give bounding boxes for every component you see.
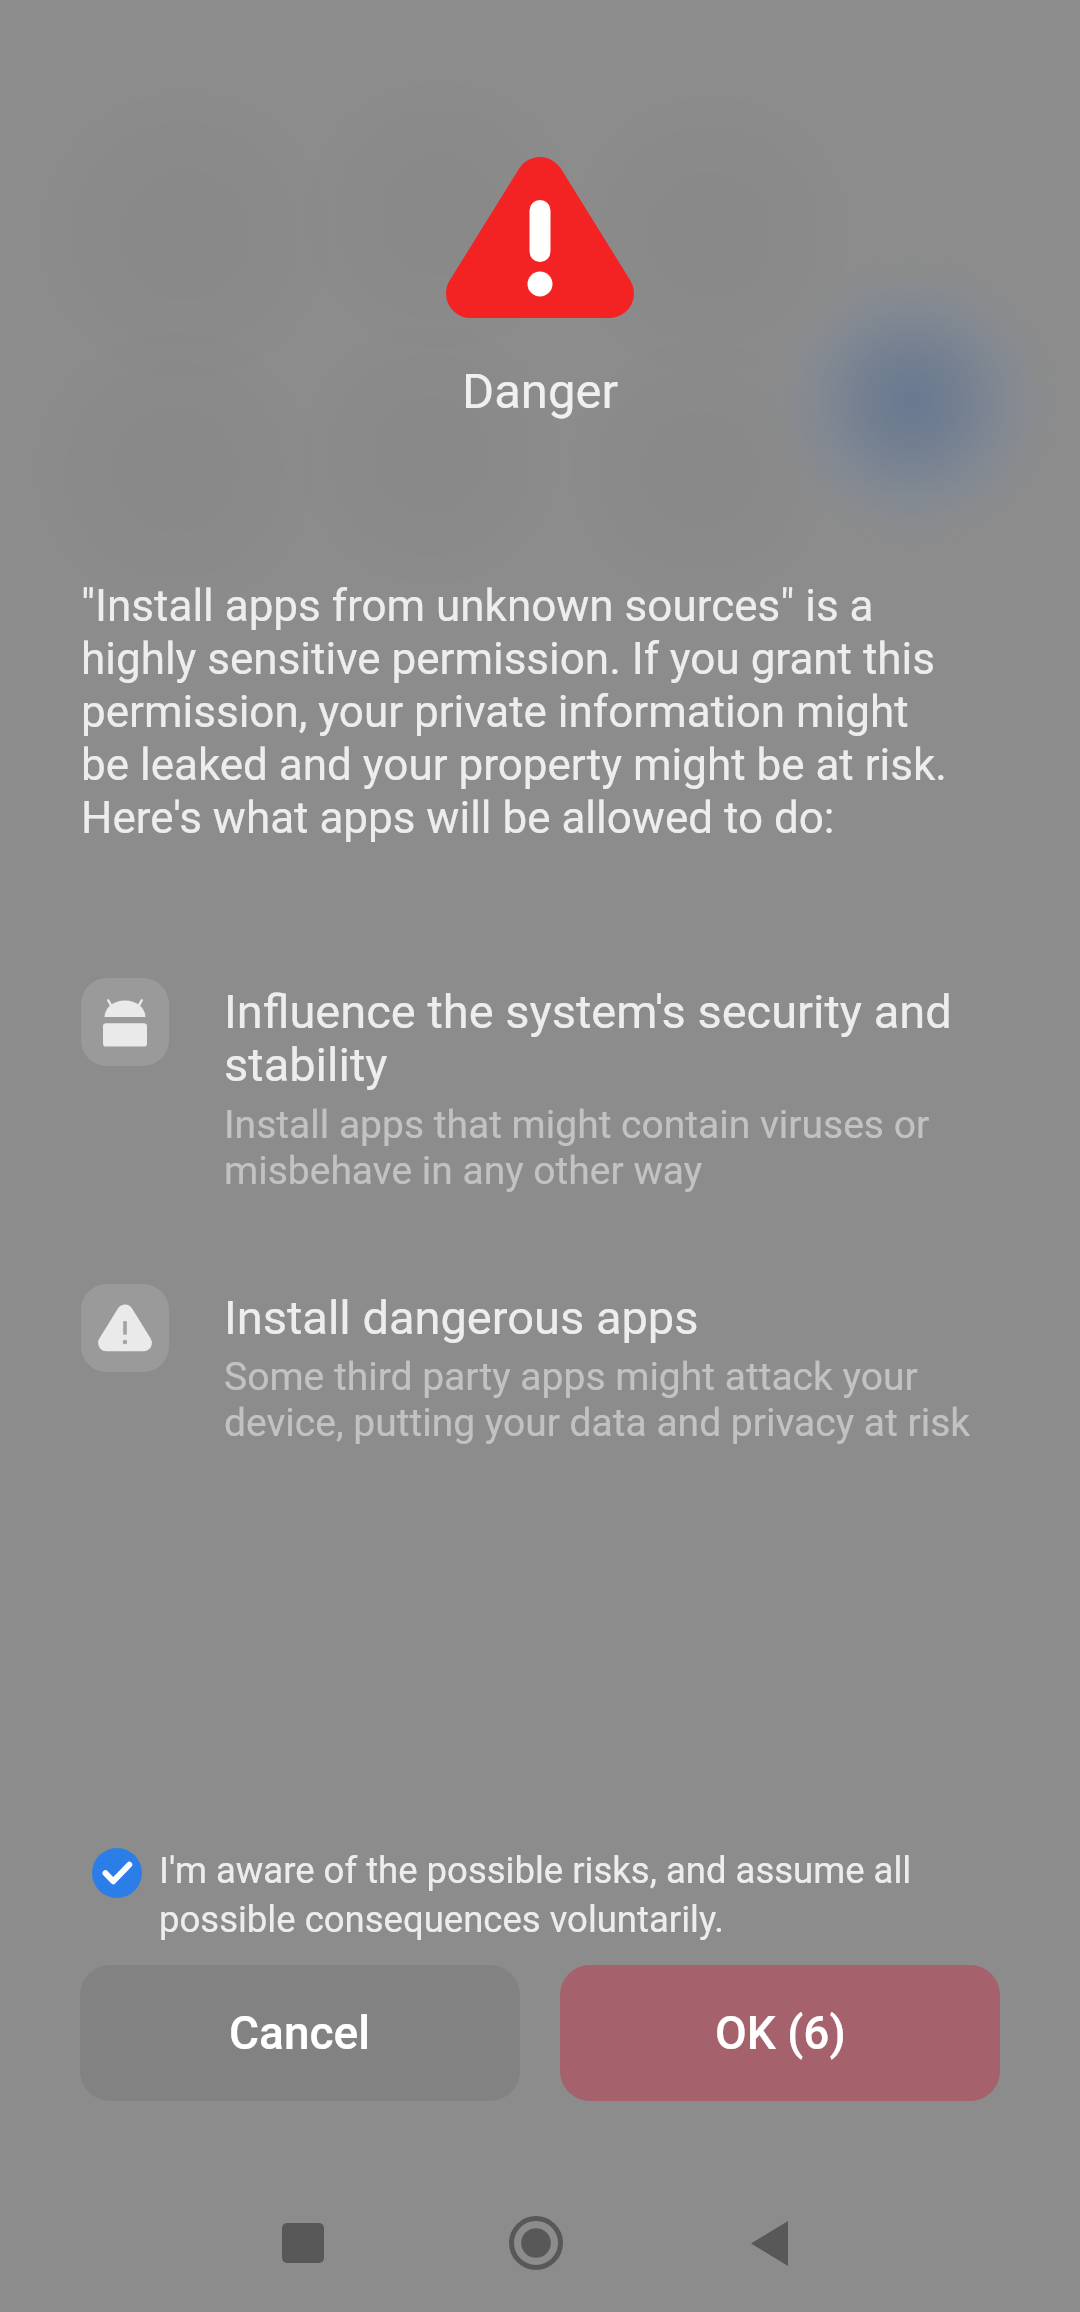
staticText: Cancel (229, 2006, 371, 2060)
staticText: Influence the system's security and stab… (224, 984, 1004, 1093)
staticText: OK (6) (715, 2006, 846, 2060)
button[interactable]: Back (709, 2183, 829, 2303)
button[interactable]: I'm aware of the possible risks, and ass… (92, 1848, 992, 1940)
staticText: I'm aware of the possible risks, and ass… (159, 1849, 992, 1941)
staticText: "Install apps from unknown sources" is a… (81, 580, 957, 843)
staticText: Install apps that might contain viruses … (224, 1102, 1004, 1193)
staticText: Danger (0, 363, 1080, 420)
button[interactable]: OK (6) (560, 1965, 1000, 2101)
staticText: Install dangerous apps (224, 1290, 699, 1345)
button[interactable]: Cancel (80, 1965, 520, 2101)
button[interactable]: Recent apps (243, 2183, 363, 2303)
staticText: Some third party apps might attack your … (224, 1354, 1004, 1445)
button[interactable]: Home (476, 2183, 596, 2303)
